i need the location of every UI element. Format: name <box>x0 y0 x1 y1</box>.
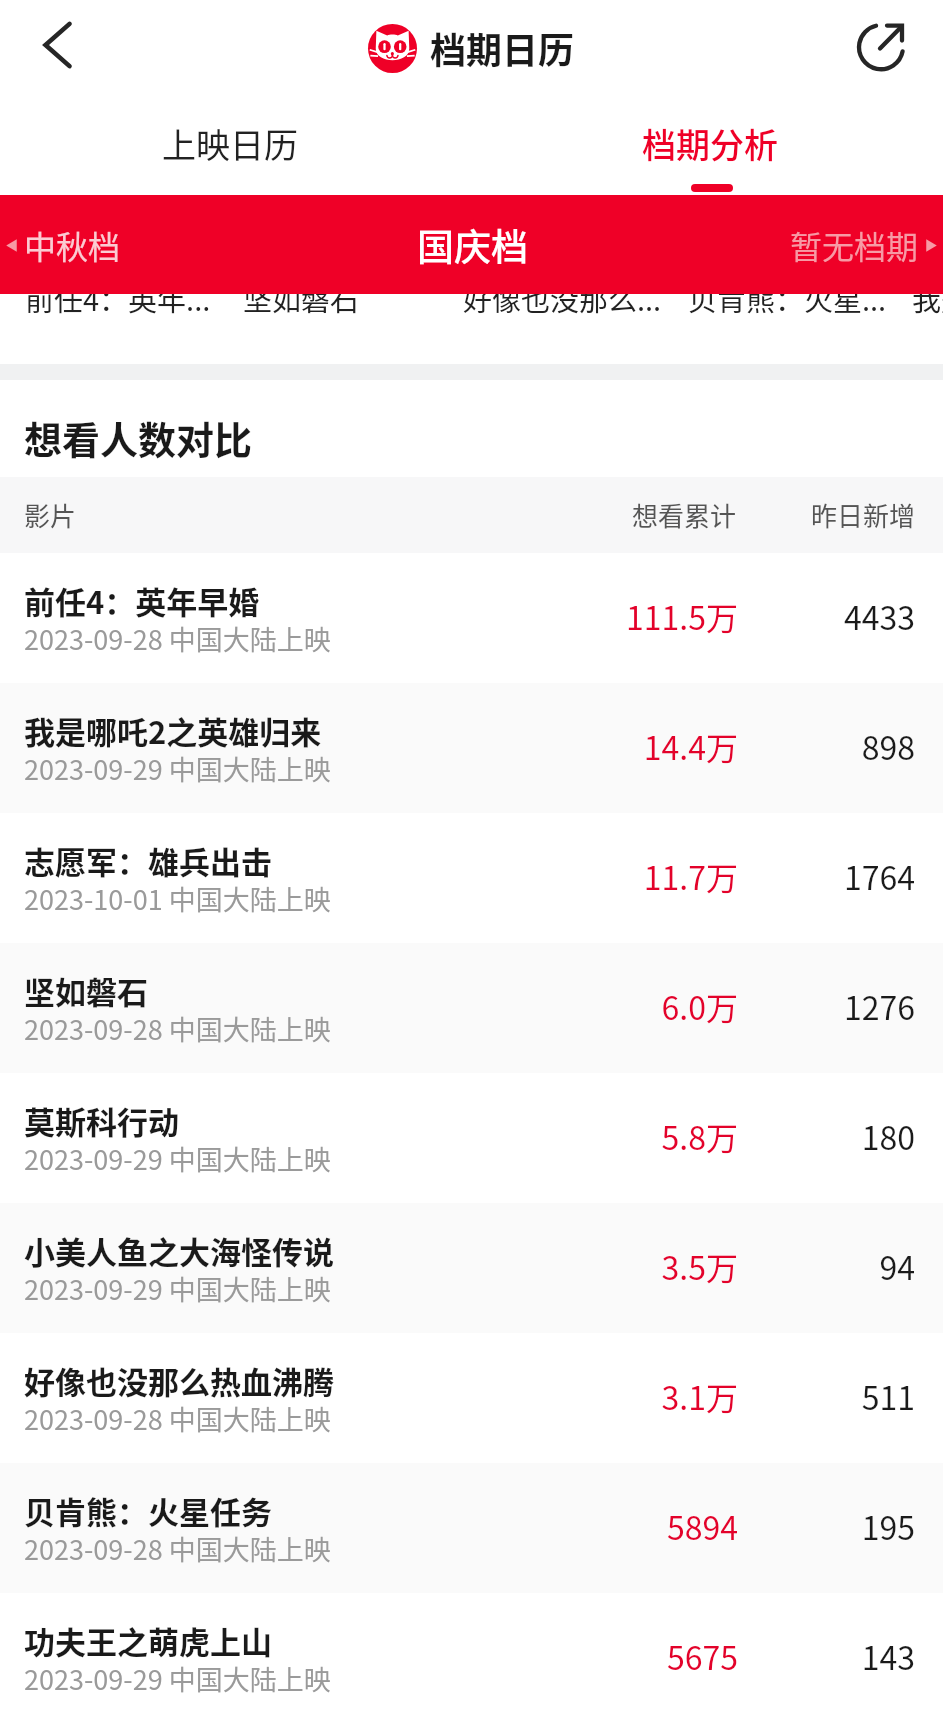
staticText: 3.5万 <box>606 1243 738 1289</box>
staticText: 我是... <box>912 277 943 319</box>
button[interactable]: 好像也没那么热血沸腾 <box>0 1333 943 1463</box>
button[interactable]: 上映日历 <box>0 100 471 195</box>
staticText: 贝肯熊：火星... <box>688 277 887 319</box>
staticText: 14.4万 <box>606 723 738 769</box>
staticText: 111.5万 <box>606 593 738 639</box>
button[interactable]: 小美人鱼之大海怪传说 <box>0 1203 943 1333</box>
button[interactable]: 暂无档期 <box>629 195 943 294</box>
staticText: 我是哪吒2之英雄归来 <box>24 708 322 753</box>
staticText: 想看累计 <box>606 496 736 534</box>
staticText: 2023-10-01 中国大陆上映 <box>24 879 331 918</box>
staticText: 195 <box>766 1503 915 1549</box>
staticText: 5.8万 <box>606 1113 738 1159</box>
button[interactable]: 莫斯科行动 <box>0 1073 943 1203</box>
staticText: 志愿军：雄兵出击 <box>24 838 272 883</box>
button[interactable]: 贝肯熊：火星任务 <box>0 1463 943 1593</box>
staticText: 5675 <box>606 1633 738 1679</box>
staticText: 好像也没那么... <box>463 277 662 319</box>
staticText: 94 <box>766 1243 915 1289</box>
button[interactable]: 中秋档 <box>0 195 315 294</box>
staticText: 6.0万 <box>606 983 738 1029</box>
staticText: 想看人数对比 <box>24 410 253 465</box>
staticText: 4433 <box>766 593 915 639</box>
staticText: 国庆档 <box>417 218 528 272</box>
button[interactable]: 国庆档 <box>315 195 629 294</box>
staticText: 2023-09-29 中国大陆上映 <box>24 1139 331 1178</box>
staticText: 莫斯科行动 <box>24 1098 179 1143</box>
button[interactable]: Back <box>18 10 98 90</box>
button[interactable]: 档期分析 <box>471 100 943 195</box>
staticText: 坚如磐石 <box>24 968 148 1013</box>
staticText: 前任4：英年早婚 <box>24 578 260 623</box>
staticText: 前任4：英年... <box>25 277 211 319</box>
staticText: 2023-09-28 中国大陆上映 <box>24 1009 331 1048</box>
button[interactable]: 志愿军：雄兵出击 <box>0 813 943 943</box>
staticText: 2023-09-29 中国大陆上映 <box>24 1659 331 1698</box>
staticText: 小美人鱼之大海怪传说 <box>24 1228 334 1273</box>
staticText: 影片 <box>24 496 606 534</box>
staticText: 昨日新增 <box>766 496 915 534</box>
staticText: 档期分析 <box>642 119 778 168</box>
staticText: 1276 <box>766 983 915 1029</box>
staticText: 2023-09-29 中国大陆上映 <box>24 749 331 788</box>
button[interactable]: 功夫王之萌虎上山 <box>0 1593 943 1723</box>
button[interactable]: 坚如磐石 <box>0 943 943 1073</box>
staticText: 5894 <box>606 1503 738 1549</box>
button[interactable]: 我是哪吒2之英雄归来 <box>0 683 943 813</box>
staticText: 11.7万 <box>606 853 738 899</box>
staticText: 2023-09-28 中国大陆上映 <box>24 1399 331 1438</box>
staticText: 坚如磐石 <box>243 277 360 319</box>
staticText: 上映日历 <box>162 119 298 168</box>
staticText: 中秋档 <box>24 222 121 268</box>
staticText: 贝肯熊：火星任务 <box>24 1488 272 1533</box>
staticText: 143 <box>766 1633 915 1679</box>
staticText: 暂无档期 <box>790 222 919 268</box>
staticText: 898 <box>766 723 915 769</box>
staticText: 511 <box>766 1373 915 1419</box>
staticText: 180 <box>766 1113 915 1159</box>
button[interactable]: Share <box>843 10 923 90</box>
staticText: 好像也没那么热血沸腾 <box>24 1358 334 1403</box>
staticText: 2023-09-28 中国大陆上映 <box>24 619 331 658</box>
staticText: 3.1万 <box>606 1373 738 1419</box>
staticText: 功夫王之萌虎上山 <box>24 1618 272 1663</box>
staticText: 2023-09-28 中国大陆上映 <box>24 1529 331 1568</box>
staticText: 档期日历 <box>430 22 575 74</box>
staticText: 1764 <box>766 853 915 899</box>
button[interactable]: 前任4：英年早婚 <box>0 553 943 683</box>
staticText: 2023-09-29 中国大陆上映 <box>24 1269 331 1308</box>
